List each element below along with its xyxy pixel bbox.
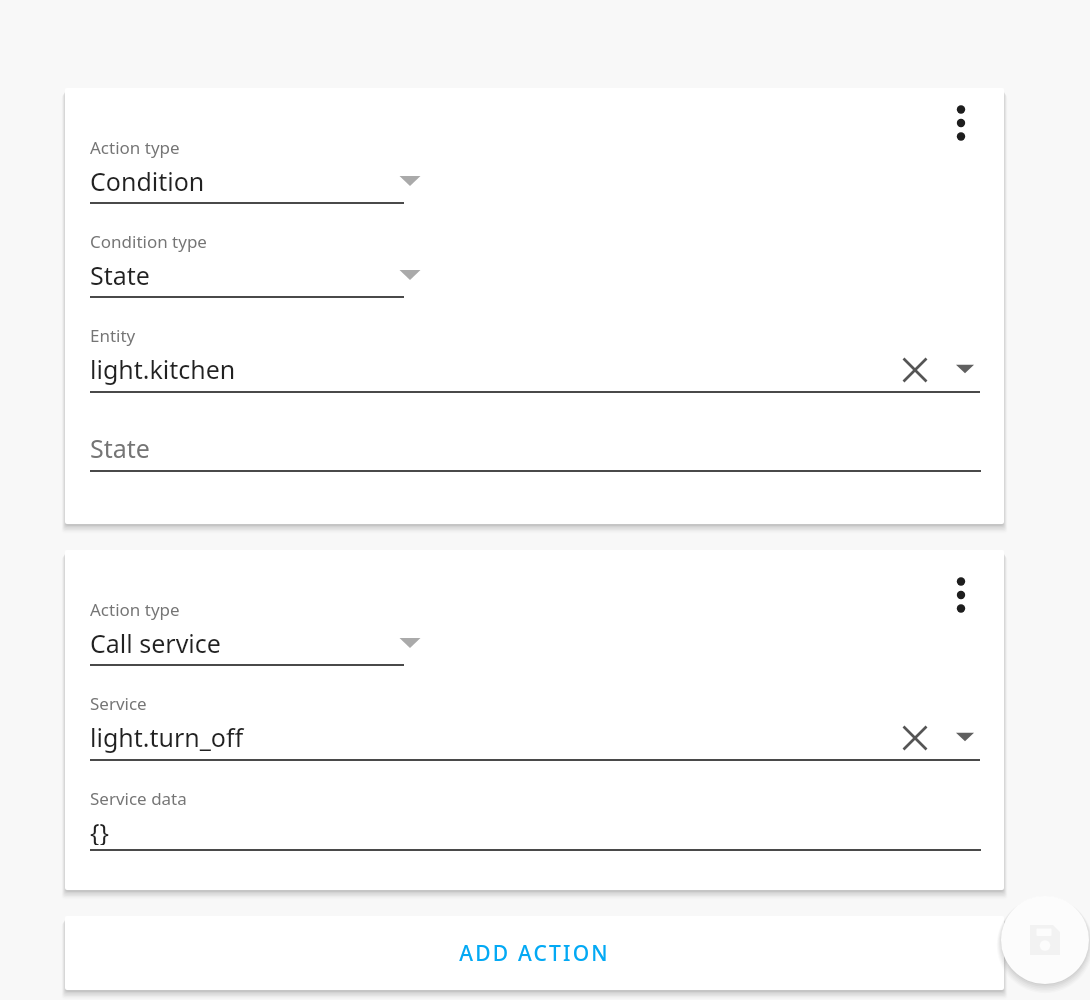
button[interactable]: ADD ACTION <box>65 916 1004 990</box>
staticText: State <box>90 258 150 290</box>
staticText: light.turn_off <box>90 720 244 754</box>
staticText: ADD ACTION <box>459 939 610 968</box>
button[interactable]: More options <box>939 101 983 145</box>
staticText: Call service <box>90 626 221 658</box>
button[interactable]: Clear <box>895 350 935 384</box>
button[interactable]: More options <box>939 573 983 617</box>
staticText: State <box>90 431 150 465</box>
staticText: Condition type <box>90 230 207 253</box>
button[interactable]: More options <box>65 88 1004 524</box>
staticText: Condition <box>90 164 205 196</box>
staticText: light.kitchen <box>90 352 236 386</box>
button[interactable]: Save <box>1001 896 1089 984</box>
staticText: Entity <box>90 324 136 347</box>
staticText: Action type <box>90 598 180 621</box>
button[interactable]: Clear <box>895 718 935 752</box>
staticText: Service <box>90 692 147 715</box>
staticText: Action type <box>90 136 180 159</box>
staticText: {} <box>90 815 110 845</box>
staticText: Service data <box>90 787 187 810</box>
button[interactable]: More options <box>65 550 1004 890</box>
